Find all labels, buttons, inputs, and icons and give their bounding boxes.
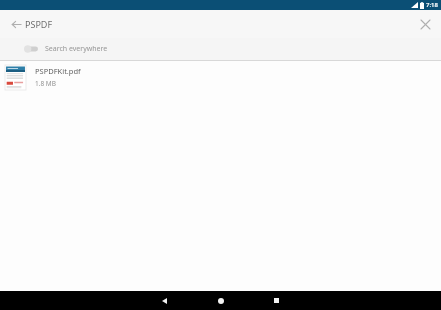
button[interactable]: Recent apps <box>267 291 286 310</box>
staticText: PSPDFKit.pdf <box>35 66 81 76</box>
button[interactable]: Back <box>155 291 174 310</box>
button[interactable]: Search everywhere <box>0 38 441 60</box>
button[interactable]: Close <box>415 14 435 34</box>
button[interactable]: PSPDFKit.pdf <box>0 61 441 93</box>
button[interactable]: Back <box>6 14 26 34</box>
staticText: 1.8 MB <box>35 79 56 88</box>
staticText: 7:18 <box>426 1 438 9</box>
button[interactable]: Home <box>211 291 230 310</box>
staticText: Search everywhere <box>45 44 108 54</box>
staticText: PSPDF <box>25 18 53 30</box>
